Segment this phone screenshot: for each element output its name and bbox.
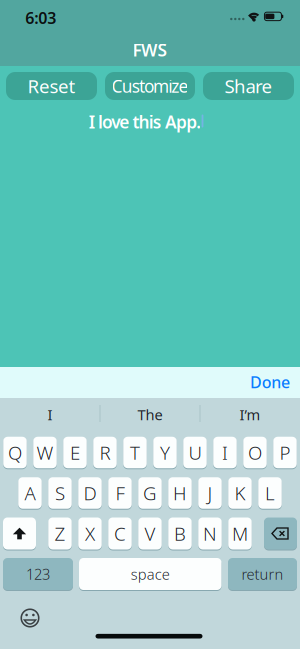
button[interactable]: C xyxy=(108,516,132,550)
staticText: C xyxy=(114,521,126,546)
staticText: R xyxy=(99,440,110,465)
button[interactable]: O xyxy=(243,436,267,469)
staticText: I’m xyxy=(239,405,260,424)
staticText: I xyxy=(47,405,52,424)
button[interactable]: T xyxy=(123,436,147,469)
staticText: B xyxy=(174,521,186,546)
button[interactable]: N xyxy=(198,516,222,550)
staticText: G xyxy=(143,481,157,505)
button[interactable]: P xyxy=(273,436,297,469)
staticText: V xyxy=(144,521,155,546)
button[interactable]: I xyxy=(213,436,237,469)
button[interactable]: Shift xyxy=(3,516,36,550)
staticText: 6:03 xyxy=(25,7,56,28)
staticText: N xyxy=(203,521,217,546)
button[interactable]: Reset xyxy=(6,72,97,100)
button[interactable]: Emoji xyxy=(19,607,41,629)
staticText: I love this App. xyxy=(89,110,201,133)
staticText: The xyxy=(137,405,162,424)
button[interactable]: F xyxy=(108,476,132,510)
staticText: J xyxy=(207,481,212,505)
button[interactable]: Customize xyxy=(105,72,195,100)
button[interactable]: The xyxy=(102,401,198,427)
staticText: X xyxy=(85,521,95,546)
button[interactable]: I’m xyxy=(202,401,298,427)
button[interactable]: Q xyxy=(3,436,27,469)
staticText: W xyxy=(36,440,53,465)
button[interactable]: Z xyxy=(48,516,72,550)
staticText: K xyxy=(234,481,245,505)
staticText: O xyxy=(248,440,262,465)
staticText: Done xyxy=(250,371,290,393)
button[interactable]: S xyxy=(48,476,72,510)
staticText: Z xyxy=(54,521,65,546)
staticText: H xyxy=(173,481,187,505)
staticText: P xyxy=(279,440,290,465)
button[interactable]: G xyxy=(138,476,162,510)
button[interactable]: D xyxy=(78,476,102,510)
staticText: E xyxy=(70,440,80,465)
staticText: A xyxy=(24,481,35,505)
staticText: U xyxy=(188,440,201,465)
staticText: Q xyxy=(8,440,22,465)
staticText: D xyxy=(83,481,96,505)
staticText: Share xyxy=(224,74,272,98)
button[interactable]: L xyxy=(258,476,282,510)
button[interactable]: X xyxy=(78,516,102,550)
staticText: M xyxy=(232,521,248,546)
staticText: space xyxy=(131,564,170,584)
button[interactable]: W xyxy=(33,436,57,469)
button[interactable]: Done xyxy=(240,367,300,397)
staticText: 123 xyxy=(26,564,50,584)
button[interactable]: M xyxy=(228,516,252,550)
button[interactable]: space xyxy=(79,557,221,591)
button[interactable]: return xyxy=(228,557,297,591)
button[interactable]: V xyxy=(138,516,162,550)
staticText: T xyxy=(130,440,140,465)
button[interactable]: E xyxy=(63,436,87,469)
staticText: Customize xyxy=(112,74,188,97)
staticText: Y xyxy=(160,440,170,465)
button[interactable]: Delete xyxy=(264,516,297,550)
button[interactable]: B xyxy=(168,516,192,550)
button[interactable]: I xyxy=(2,401,98,427)
staticText: return xyxy=(241,564,283,584)
button[interactable]: U xyxy=(183,436,207,469)
button[interactable]: A xyxy=(18,476,42,510)
button[interactable]: K xyxy=(228,476,252,510)
button[interactable]: R xyxy=(93,436,117,469)
staticText: I xyxy=(222,440,228,465)
button[interactable]: 123 xyxy=(3,557,73,591)
staticText: F xyxy=(115,481,124,505)
button[interactable]: Y xyxy=(153,436,177,469)
staticText: Reset xyxy=(27,74,75,98)
button[interactable]: H xyxy=(168,476,192,510)
staticText: S xyxy=(55,481,65,505)
button[interactable]: J xyxy=(198,476,222,510)
staticText: L xyxy=(265,481,275,505)
staticText: FWS xyxy=(132,38,167,61)
button[interactable]: Share xyxy=(203,72,294,100)
